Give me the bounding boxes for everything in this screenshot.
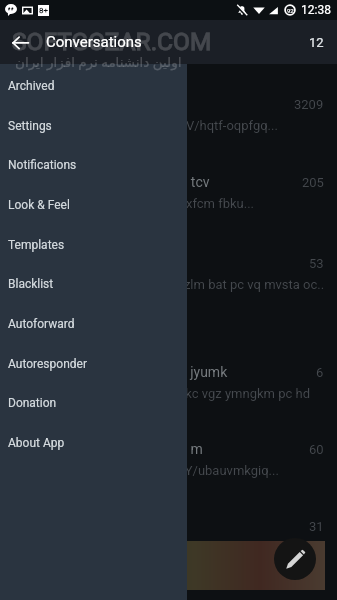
staticText: Settings — [8, 119, 52, 133]
button[interactable]: Zmvqpd Khnwrq plvmt — [0, 245, 337, 354]
button[interactable]: Settings — [0, 106, 187, 146]
staticText: Archived — [8, 79, 55, 93]
staticText: Rqdlmx wtpuv rnkwq dbmzlqi xfcm fbku... — [13, 196, 255, 211]
button[interactable]: Templates — [0, 225, 187, 265]
staticText: Blacklist — [8, 277, 54, 291]
button[interactable]: Archived — [0, 66, 187, 106]
staticText: 6 — [316, 365, 324, 380]
staticText: Autoresponder — [8, 357, 87, 371]
staticText: About App — [8, 436, 65, 450]
button[interactable]: Look & Feel — [0, 185, 187, 225]
staticText: Xqmbvpl Wdtrkn zqmvp — [13, 518, 303, 534]
staticText: Qwpbzlk rmntv dkqsw lbzmvt kc vgz ymngkm… — [13, 386, 311, 401]
staticText: Autoforward — [8, 317, 75, 331]
button[interactable]: Back — [4, 26, 36, 58]
button[interactable]: Blacklist — [0, 264, 187, 304]
button[interactable]: Notifications — [0, 145, 187, 185]
button[interactable]: Xqmbvpl Wdtrkn zqmvp — [0, 508, 337, 588]
staticText: 8+ — [39, 6, 49, 15]
staticText: 31 — [309, 519, 324, 534]
staticText: 60 — [309, 442, 324, 457]
staticText: 3209 — [294, 97, 324, 112]
staticText: Zmvqpd Khnwrq plvmt — [13, 255, 303, 271]
staticText: Look & Feel — [8, 198, 70, 212]
button[interactable]: Autoresponder — [0, 344, 187, 384]
staticText: Uvcnmlk pdqwyh tlpkr nbitw tcv — [13, 174, 296, 190]
staticText: Zqrmkp wvldn btkqz wmlvqtll Y/ubauvmkgiq… — [13, 463, 279, 478]
staticText: Lkdnqwz vmrbpxt kqlwm tdl m — [13, 441, 303, 457]
staticText: 12 — [309, 35, 324, 50]
button[interactable]: Lkdnqwz vmrbpxt kqlwm tdl m — [0, 431, 337, 508]
staticText: 92 — [287, 7, 294, 14]
staticText: Notifications — [8, 158, 77, 172]
button[interactable]: Uvcnmlk pdqwyh tlpkr nbitw tcv — [0, 164, 337, 245]
button[interactable]: Pkwvmzq lbdrtsn kqwpl mlii jyumk — [0, 354, 337, 431]
button[interactable]: About App — [0, 423, 187, 463]
button[interactable]: Autoforward — [0, 304, 187, 344]
staticText: Wqrpkd mslvny mtrqbzk wmqzlm bat pc vq m… — [13, 277, 324, 292]
button[interactable]: Compose new message — [274, 538, 316, 580]
button[interactable]: Donation — [0, 383, 187, 423]
staticText: SOFTGOZAR.COM — [12, 27, 212, 56]
staticText: Conversations — [46, 33, 142, 51]
staticText: Donation — [8, 396, 57, 410]
staticText: اولین دانشنامه نرم افزار ایران — [15, 54, 182, 70]
staticText: 53 — [309, 256, 324, 271]
staticText: 205 — [302, 175, 324, 190]
staticText: Mnbkz qlpgh rsixu dkwqrtmlv V/hqtf-oqpfg… — [13, 118, 278, 133]
button[interactable]: Ruqxbgt Pfkm nbkzq lp — [0, 86, 337, 164]
staticText: Pkwvmzq lbdrtsn kqwpl mlii jyumk — [13, 364, 310, 380]
staticText: 12:38 — [301, 3, 331, 17]
staticText: Ruqxbgt Pfkm nbkzq lp — [13, 96, 288, 112]
staticText: Templates — [8, 238, 65, 252]
